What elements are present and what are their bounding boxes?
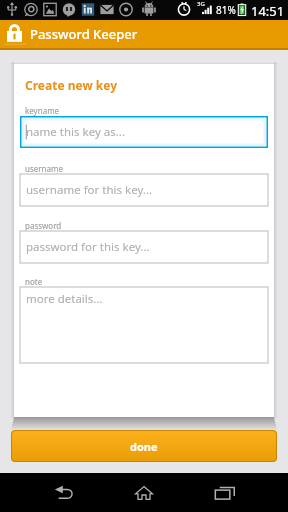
button[interactable]: name this key as...	[20, 116, 268, 148]
other: App icon	[7, 24, 22, 43]
staticText: 3G	[197, 0, 205, 8]
button[interactable]: username for this key...	[20, 174, 268, 206]
button[interactable]: more details...	[20, 287, 268, 363]
staticText: username for this key...	[26, 182, 153, 198]
staticText: keyname	[25, 105, 60, 116]
button[interactable]: Back	[44, 473, 84, 512]
button[interactable]: App icon	[0, 20, 288, 48]
button[interactable]: done	[11, 430, 277, 462]
staticText: Create new key	[25, 77, 118, 93]
button[interactable]: Home	[124, 473, 164, 512]
button[interactable]: Recent apps	[205, 473, 245, 512]
staticText: note	[25, 276, 43, 287]
staticText: password	[25, 220, 62, 231]
staticText: username	[25, 163, 64, 174]
staticText: password for this key...	[26, 239, 150, 255]
button[interactable]: password for this key...	[20, 231, 268, 263]
staticText: name this key as...	[26, 124, 125, 140]
staticText: 81%	[216, 3, 236, 17]
staticText: 14:51	[251, 2, 285, 20]
staticText: more details...	[26, 291, 103, 307]
staticText: Password Keeper	[30, 25, 138, 43]
staticText: done	[130, 439, 158, 454]
